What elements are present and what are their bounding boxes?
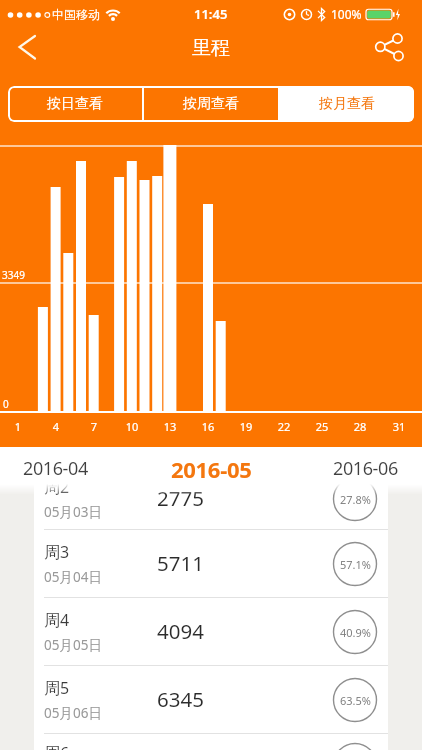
staticText: 19	[236, 419, 256, 434]
staticText: 16	[198, 419, 218, 434]
button[interactable]	[8, 26, 48, 70]
staticText: 2775	[157, 484, 204, 512]
staticText: 3349	[2, 268, 25, 282]
staticText: 57.1%	[340, 557, 371, 572]
button[interactable]: 2016-05	[161, 447, 261, 484]
staticText: 里程	[192, 36, 230, 60]
button[interactable]: 周2	[34, 484, 388, 529]
button[interactable]	[367, 29, 407, 69]
button[interactable]: 2016-06	[325, 447, 405, 484]
staticText: 05月03日	[44, 503, 102, 521]
staticText: 5711	[157, 549, 204, 577]
button[interactable]: 按月查看	[280, 86, 414, 122]
staticText: 0	[3, 397, 9, 411]
staticText: 1	[8, 419, 28, 434]
staticText: 10	[122, 419, 142, 434]
staticText: 2016-04	[23, 456, 88, 481]
staticText: 11:45	[194, 5, 228, 23]
staticText: 25	[312, 419, 332, 434]
staticText: 2016-06	[333, 456, 398, 481]
staticText: 2016-05	[171, 454, 252, 484]
staticText: 按周查看	[183, 95, 239, 113]
staticText: 4	[46, 419, 66, 434]
staticText: 7	[84, 419, 104, 434]
staticText: 6345	[157, 685, 204, 713]
button[interactable]: 2016-04	[15, 447, 95, 484]
staticText: 63.5%	[340, 693, 371, 708]
button[interactable]: 按周查看	[144, 86, 278, 122]
staticText: 27.8%	[340, 492, 371, 507]
button[interactable]: 周4	[34, 598, 388, 665]
staticText: 按月查看	[319, 95, 375, 113]
button[interactable]: 周5	[34, 666, 388, 733]
staticText: 05月05日	[44, 636, 102, 654]
button[interactable]: 周6	[34, 734, 388, 750]
staticText: 按日查看	[47, 95, 103, 113]
staticText: 100%	[331, 6, 362, 22]
staticText: 40.9%	[340, 625, 371, 640]
staticText: 05月04日	[44, 568, 102, 586]
staticText: 周5	[44, 677, 70, 699]
staticText: 22	[274, 419, 294, 434]
staticText: 周6	[44, 742, 70, 750]
button[interactable]: 周3	[34, 530, 388, 597]
staticText: 4094	[157, 617, 204, 645]
staticText: 31	[389, 419, 409, 434]
staticText: 周4	[44, 609, 70, 631]
staticText: 周3	[44, 541, 70, 563]
button[interactable]: 按日查看	[8, 86, 142, 122]
staticText: 28	[350, 419, 370, 434]
staticText: 13	[160, 419, 180, 434]
staticText: 中国移动	[52, 7, 100, 22]
staticText: 周2	[44, 484, 70, 498]
staticText: 05月06日	[44, 704, 102, 722]
